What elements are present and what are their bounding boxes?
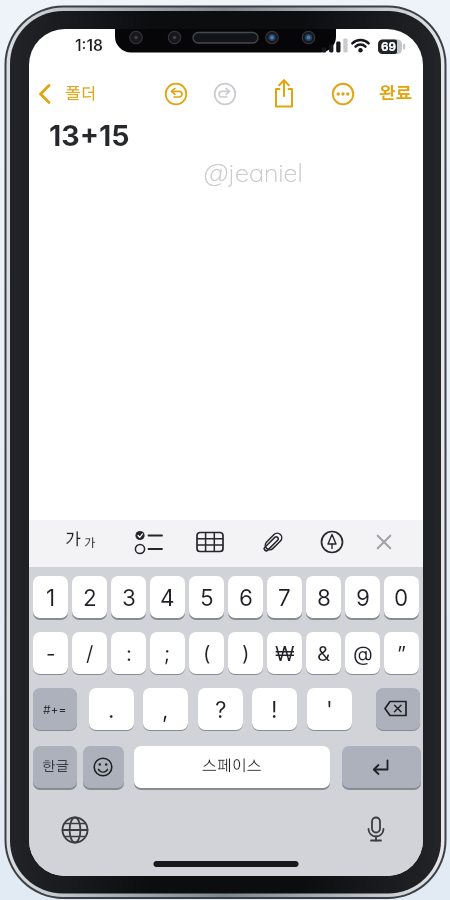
staticText: #+= — [43, 702, 67, 717]
button[interactable]: ( — [189, 632, 224, 674]
staticText: 완료 — [379, 86, 412, 103]
button[interactable]: 5 — [189, 576, 224, 618]
staticText: 가 — [84, 537, 96, 549]
staticText: 1:18 — [75, 36, 103, 55]
button[interactable] — [208, 77, 242, 111]
button[interactable]: 0 — [384, 576, 419, 618]
button[interactable]: . — [89, 688, 134, 730]
button[interactable]: 6 — [228, 576, 263, 618]
button[interactable] — [127, 521, 169, 565]
staticText: - — [46, 641, 56, 666]
button[interactable] — [326, 77, 360, 111]
staticText: 폴더 — [65, 86, 97, 103]
staticText: 0 — [394, 584, 409, 611]
button[interactable]: ; — [150, 632, 185, 674]
button[interactable]: ? — [198, 688, 243, 730]
staticText: ? — [215, 696, 227, 723]
button[interactable]: ) — [228, 632, 263, 674]
staticText: 4 — [160, 584, 175, 611]
staticText: ' — [326, 696, 333, 723]
staticText: ( — [203, 641, 211, 666]
staticText: 1 — [46, 584, 56, 611]
button[interactable]: 한글 — [33, 746, 77, 788]
staticText: ” — [397, 641, 407, 666]
button[interactable] — [190, 521, 232, 565]
button[interactable]: @ — [345, 632, 380, 674]
button[interactable]: #+= — [33, 688, 77, 730]
staticText: / — [86, 641, 94, 666]
button[interactable] — [250, 521, 292, 565]
button[interactable]: 1 — [33, 576, 68, 618]
button[interactable]: 2 — [72, 576, 107, 618]
staticText: ) — [242, 641, 250, 666]
staticText: ; — [164, 641, 171, 666]
button[interactable] — [65, 521, 107, 565]
button[interactable] — [369, 521, 411, 565]
staticText: ₩ — [275, 641, 295, 666]
staticText: . — [108, 696, 115, 723]
button[interactable] — [376, 688, 420, 730]
button[interactable]: , — [143, 688, 188, 730]
staticText: 한글 — [42, 760, 69, 774]
staticText: 5 — [200, 584, 214, 611]
button[interactable]: 3 — [111, 576, 146, 618]
button[interactable]: ” — [384, 632, 419, 674]
button[interactable] — [356, 810, 396, 850]
button[interactable]: ! — [252, 688, 297, 730]
button[interactable]: 4 — [150, 576, 185, 618]
button[interactable]: / — [72, 632, 107, 674]
button[interactable]: 7 — [267, 576, 302, 618]
staticText: 13+15 — [49, 118, 130, 152]
staticText: 2 — [83, 584, 97, 611]
staticText: 6 — [239, 584, 253, 611]
button[interactable] — [311, 521, 353, 565]
button[interactable] — [342, 746, 421, 788]
staticText: 3 — [122, 584, 136, 611]
staticText: @ — [353, 641, 373, 666]
staticText: 7 — [278, 584, 291, 611]
button[interactable] — [55, 810, 95, 850]
staticText: 69 — [381, 40, 396, 54]
staticText: 8 — [317, 584, 331, 611]
button[interactable]: - — [33, 632, 68, 674]
staticText: & — [317, 641, 331, 666]
staticText: 9 — [356, 584, 370, 611]
staticText: 스페이스 — [202, 759, 262, 775]
button[interactable] — [369, 77, 421, 111]
button[interactable] — [267, 77, 301, 111]
button[interactable]: 9 — [345, 576, 380, 618]
button[interactable]: & — [306, 632, 341, 674]
staticText: : — [126, 641, 132, 666]
button[interactable] — [83, 746, 124, 788]
button[interactable]: ' — [307, 688, 352, 730]
staticText: @jeaniel — [204, 157, 303, 188]
staticText: , — [162, 696, 169, 723]
button[interactable]: : — [111, 632, 146, 674]
staticText: ! — [271, 696, 278, 723]
button[interactable] — [159, 77, 193, 111]
button[interactable]: ₩ — [267, 632, 302, 674]
button[interactable] — [35, 79, 111, 109]
button[interactable]: 스페이스 — [134, 746, 330, 788]
staticText: 가 — [65, 532, 82, 549]
button[interactable]: 8 — [306, 576, 341, 618]
